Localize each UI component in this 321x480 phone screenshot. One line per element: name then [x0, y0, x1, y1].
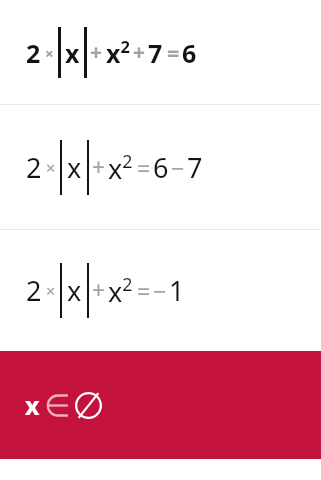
button[interactable]: 2: [0, 230, 321, 351]
staticText: x: [67, 272, 82, 309]
staticText: −: [171, 152, 185, 184]
staticText: 7: [187, 149, 203, 186]
staticText: =: [167, 38, 180, 67]
staticText: 2: [26, 36, 41, 70]
staticText: 2: [26, 149, 42, 186]
staticText: ×: [46, 280, 56, 302]
staticText: x2: [108, 149, 133, 187]
staticText: x: [65, 36, 80, 70]
staticText: 6: [153, 149, 169, 186]
staticText: 2: [26, 272, 42, 309]
staticText: 6: [182, 36, 197, 70]
staticText: 1: [169, 272, 185, 309]
button[interactable]: 2: [0, 105, 321, 229]
staticText: x: [67, 149, 82, 186]
staticText: =: [137, 275, 151, 307]
staticText: 7: [148, 36, 163, 70]
staticText: ×: [46, 157, 56, 179]
staticText: ×: [45, 43, 54, 63]
button[interactable]: 2: [0, 0, 321, 104]
staticText: =: [137, 152, 151, 184]
staticText: +: [92, 152, 105, 183]
button[interactable]: Result: x is an element of the empty set: [0, 351, 321, 459]
staticText: +: [133, 38, 146, 67]
staticText: +: [90, 38, 103, 67]
staticText: x2: [108, 272, 133, 310]
staticText: −: [153, 275, 167, 307]
staticText: x: [25, 388, 40, 422]
staticText: +: [92, 275, 105, 306]
staticText: x2: [106, 35, 130, 70]
